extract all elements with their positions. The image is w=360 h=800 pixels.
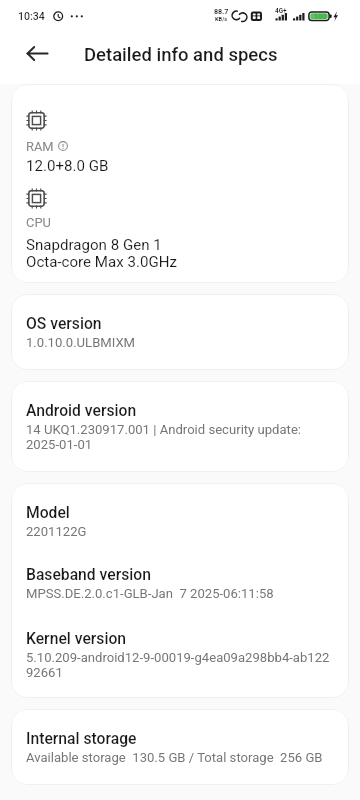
staticText: 14 UKQ1.230917.001 | Android security up… bbox=[26, 422, 302, 452]
staticText: Snapdragon 8 Gen 1 Octa-core Max 3.0GHz bbox=[26, 237, 177, 271]
staticText: Detailed info and specs bbox=[84, 44, 278, 66]
button[interactable]: Back bbox=[15, 31, 59, 75]
staticText: 10:34 bbox=[18, 11, 45, 22]
staticText: KB/s bbox=[215, 16, 228, 22]
staticText: Baseband version bbox=[26, 564, 151, 584]
staticText: Available storage 130.5 GB / Total stora… bbox=[26, 750, 323, 765]
staticText: Android version bbox=[26, 400, 137, 420]
staticText: RAM bbox=[26, 138, 54, 154]
staticText: OS version bbox=[26, 313, 102, 333]
staticText: 4G+ bbox=[275, 7, 287, 14]
staticText: 88.7 bbox=[214, 8, 229, 16]
staticText: CPU bbox=[26, 214, 51, 230]
staticText: 5.10.209-android12-9-00019-g4ea09a298bb4… bbox=[26, 650, 330, 680]
staticText: Kernel version bbox=[26, 628, 127, 648]
staticText: 2201122G bbox=[26, 524, 87, 539]
staticText: 12.0+8.0 GB bbox=[26, 158, 109, 175]
staticText: 1.0.10.0.ULBMIXM bbox=[26, 335, 136, 350]
staticText: Internal storage bbox=[26, 728, 137, 748]
staticText: Model bbox=[26, 502, 70, 522]
staticText: 100 bbox=[314, 13, 327, 21]
staticText: MPSS.DE.2.0.c1-GLB-Jan 7 2025-06:11:58 bbox=[26, 586, 274, 601]
